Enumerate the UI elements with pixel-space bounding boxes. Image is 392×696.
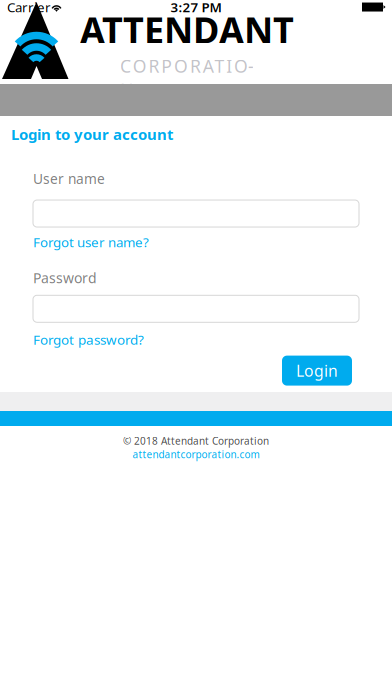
staticText: User name	[33, 169, 105, 188]
staticText: Forgot user name?	[33, 233, 149, 251]
staticText: Login	[296, 360, 338, 381]
staticText: Password	[33, 268, 97, 287]
staticText: CORPORATION	[120, 54, 254, 102]
staticText: Carrier	[7, 0, 51, 16]
button[interactable]: Forgot user name?	[0, 227, 149, 251]
staticText: ATTENDANT	[80, 5, 294, 54]
staticText: Forgot password?	[33, 330, 144, 349]
staticText: © 2018 Attendant Corporation	[123, 434, 269, 448]
staticText: attendantcorporation.com	[132, 448, 259, 461]
button[interactable]: Login	[282, 356, 352, 386]
button[interactable]: Forgot password?	[0, 322, 144, 349]
staticText: Login to your account	[11, 124, 173, 144]
staticText: 3:27 PM	[170, 0, 221, 16]
button[interactable]: attendantcorporation.com	[132, 448, 259, 461]
